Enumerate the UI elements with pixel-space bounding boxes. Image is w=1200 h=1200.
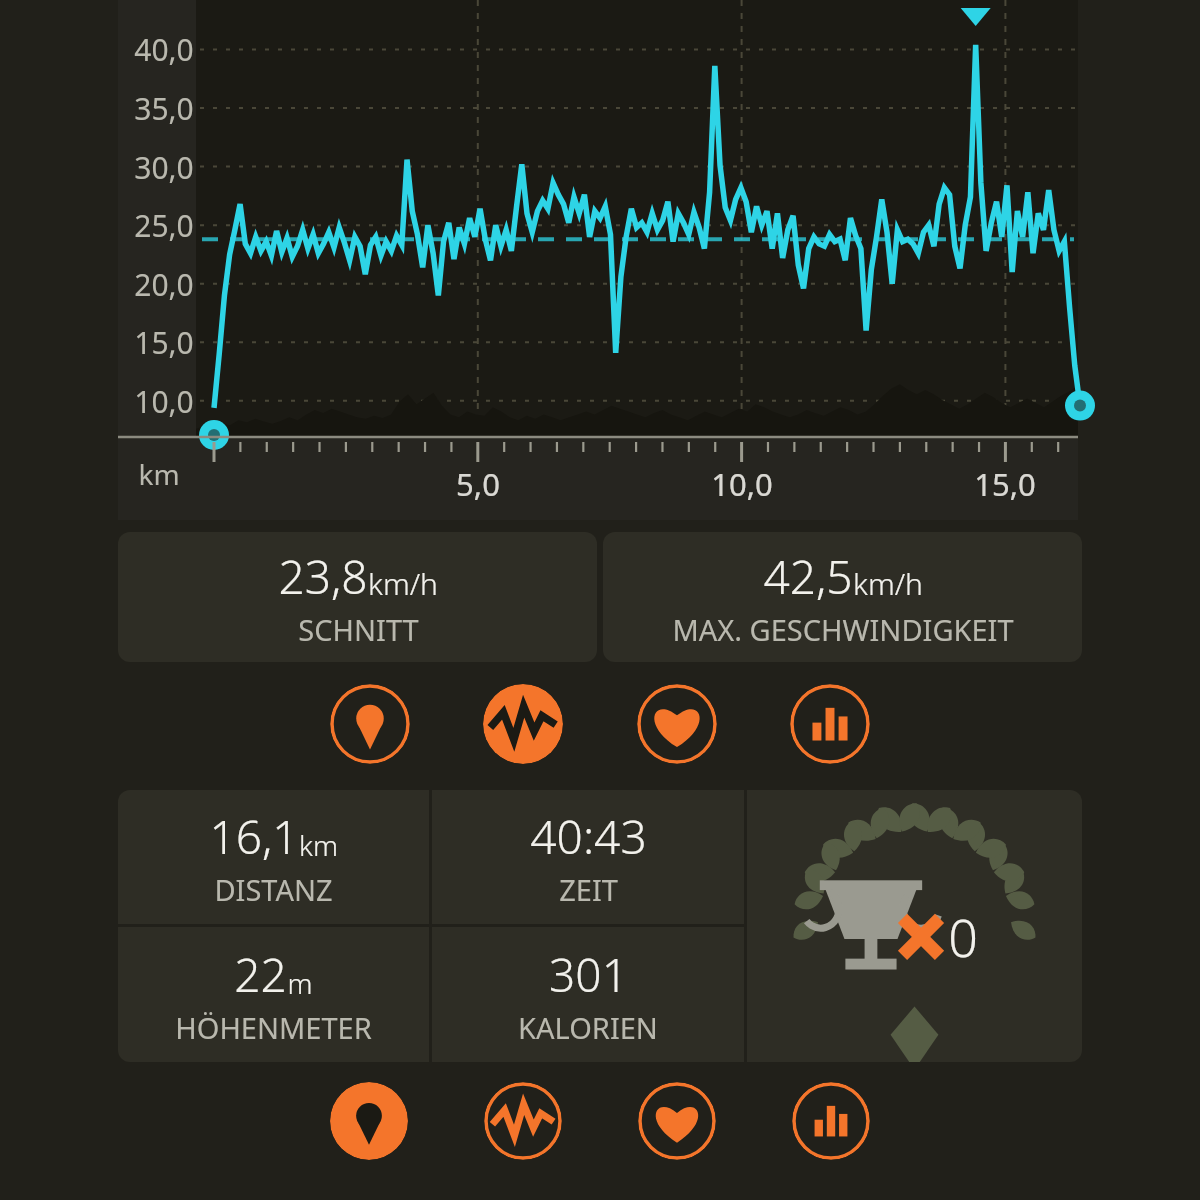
button[interactable]: 0 bbox=[747, 790, 1082, 1062]
staticText: km bbox=[299, 826, 338, 864]
staticText: MAX. GESCHWINDIGKEIT bbox=[672, 610, 1014, 649]
button[interactable]: 22 bbox=[118, 927, 429, 1062]
staticText: HÖHENMETER bbox=[175, 1008, 372, 1047]
button[interactable]: 42,5 bbox=[603, 532, 1082, 662]
staticText: 35,0 bbox=[134, 88, 194, 129]
staticText: 20,0 bbox=[134, 264, 194, 305]
button[interactable]: Heart rate bbox=[638, 1082, 716, 1160]
staticText: 0 bbox=[948, 901, 978, 972]
staticText: km bbox=[138, 455, 180, 493]
staticText: 30,0 bbox=[134, 147, 194, 188]
staticText: 16,1 bbox=[209, 805, 299, 868]
button[interactable]: Map bbox=[330, 1082, 408, 1160]
staticText: ZEIT bbox=[559, 870, 618, 909]
staticText: km/h bbox=[368, 563, 438, 604]
staticText: km/h bbox=[853, 563, 923, 604]
staticText: 10,0 bbox=[134, 381, 194, 422]
staticText: KALORIEN bbox=[518, 1008, 658, 1047]
staticText: DISTANZ bbox=[214, 870, 333, 909]
staticText: 23,8 bbox=[278, 545, 368, 608]
staticText: 10,0 bbox=[711, 463, 773, 505]
button[interactable]: 301 bbox=[432, 927, 744, 1062]
staticText: 301 bbox=[549, 943, 628, 1006]
staticText: 42,5 bbox=[763, 545, 853, 608]
button[interactable]: Statistics bbox=[792, 1082, 870, 1160]
button[interactable]: 40:43 bbox=[432, 790, 744, 924]
button[interactable]: Map bbox=[330, 684, 410, 764]
staticText: 15,0 bbox=[134, 322, 194, 363]
staticText: 22 bbox=[234, 943, 287, 1006]
button[interactable]: Statistics bbox=[790, 684, 870, 764]
staticText: 25,0 bbox=[134, 205, 194, 246]
staticText: m bbox=[287, 964, 313, 1002]
button[interactable]: Speed bbox=[484, 1082, 562, 1160]
button[interactable]: 23,8 bbox=[118, 532, 597, 662]
staticText: 5,0 bbox=[456, 463, 500, 505]
staticText: 15,0 bbox=[974, 463, 1036, 505]
button[interactable]: Speed bbox=[483, 684, 563, 764]
staticText: 40,0 bbox=[134, 29, 194, 70]
staticText: 40:43 bbox=[530, 805, 647, 868]
button[interactable]: Heart rate bbox=[637, 684, 717, 764]
staticText: SCHNITT bbox=[298, 610, 419, 649]
button[interactable]: 16,1 bbox=[118, 790, 429, 924]
